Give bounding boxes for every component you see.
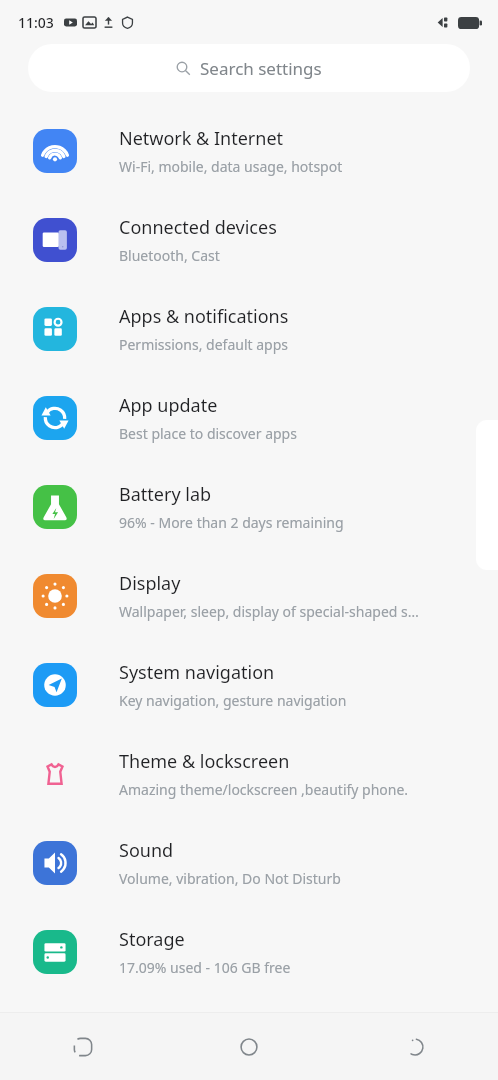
- staticText: System navigation: [119, 660, 275, 685]
- button[interactable]: Recents: [0, 1013, 166, 1080]
- button[interactable]: Theme & lockscreen: [0, 729, 498, 818]
- staticText: 96% - More than 2 days remaining: [119, 513, 344, 532]
- button[interactable]: Home: [166, 1013, 332, 1080]
- staticText: Theme & lockscreen: [119, 749, 290, 774]
- button[interactable]: Sound: [0, 818, 498, 907]
- staticText: Bluetooth, Cast: [119, 246, 220, 265]
- button[interactable]: Battery lab: [0, 462, 498, 551]
- staticText: 11:03: [18, 13, 54, 32]
- staticText: Volume, vibration, Do Not Disturb: [119, 869, 341, 888]
- staticText: Permissions, default apps: [119, 335, 289, 354]
- staticText: Network & Internet: [119, 126, 284, 151]
- button[interactable]: System navigation: [0, 640, 498, 729]
- staticText: Storage: [119, 927, 185, 952]
- staticText: 17.09% used - 106 GB free: [119, 958, 291, 977]
- button[interactable]: Display: [0, 551, 498, 640]
- staticText: Search settings: [200, 57, 322, 80]
- button[interactable]: Connected devices: [0, 195, 498, 284]
- staticText: Connected devices: [119, 215, 277, 240]
- button[interactable]: Back: [332, 1013, 498, 1080]
- staticText: App update: [119, 393, 218, 418]
- staticText: Wallpaper, sleep, display of special-sha…: [119, 602, 419, 621]
- button[interactable]: Storage: [0, 907, 498, 996]
- staticText: Wi-Fi, mobile, data usage, hotspot: [119, 157, 343, 176]
- staticText: Key navigation, gesture navigation: [119, 691, 347, 710]
- staticText: Amazing theme/lockscreen ,beautify phone…: [119, 780, 409, 799]
- staticText: Best place to discover apps: [119, 424, 297, 443]
- staticText: Display: [119, 571, 181, 596]
- staticText: Battery lab: [119, 482, 212, 507]
- staticText: Sound: [119, 838, 174, 863]
- button[interactable]: Search settings: [28, 44, 470, 92]
- staticText: Apps & notifications: [119, 304, 289, 329]
- button[interactable]: App update: [0, 373, 498, 462]
- button[interactable]: Apps & notifications: [0, 284, 498, 373]
- button[interactable]: Network & Internet: [0, 106, 498, 195]
